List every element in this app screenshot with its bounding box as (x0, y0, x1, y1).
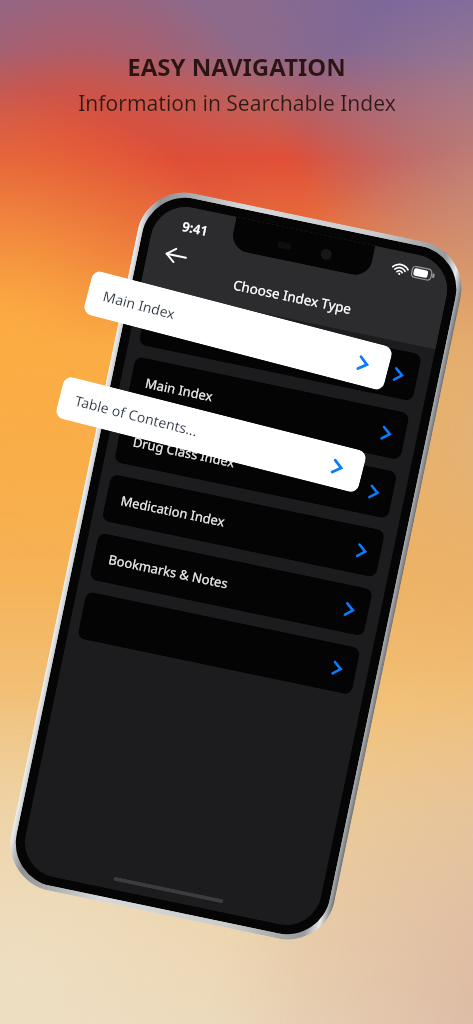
button[interactable]: Bookmarks & Notes (89, 532, 373, 636)
button[interactable] (77, 591, 361, 695)
button[interactable]: Medication Index (101, 473, 385, 578)
button[interactable]: Main Index (126, 356, 410, 460)
staticText: Information in Searchable Index (78, 89, 396, 118)
staticText: Main Index (101, 286, 177, 323)
button[interactable]: Back (155, 235, 195, 275)
staticText: 9:41 (181, 217, 210, 240)
button[interactable]: Table of Contents... (54, 375, 367, 494)
staticText: EASY NAVIGATION (127, 50, 346, 83)
button[interactable]: Drug Class Index (114, 415, 398, 519)
staticText: Main Index (144, 374, 215, 405)
button[interactable]: Table of Contents (138, 297, 422, 401)
staticText: Table of Contents (156, 315, 264, 355)
staticText: Choose Index Type (232, 276, 354, 318)
staticText: Drug Class Index (131, 433, 237, 471)
staticText: Bookmarks & Notes (107, 550, 230, 593)
staticText: Table of Contents... (73, 391, 200, 440)
staticText: Medication Index (119, 491, 227, 531)
button[interactable]: Main Index (82, 270, 394, 391)
